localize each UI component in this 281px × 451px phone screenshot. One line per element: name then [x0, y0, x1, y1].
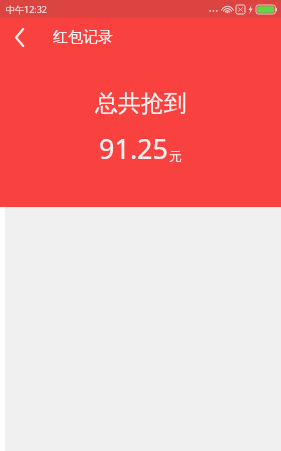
staticText: 红包记录: [53, 28, 113, 47]
staticText: 元: [169, 148, 182, 164]
button[interactable]: Back: [0, 18, 40, 56]
staticText: 中午12:32: [6, 3, 48, 15]
staticText: 91.25: [99, 130, 169, 167]
staticText: 总共抢到: [95, 89, 187, 118]
